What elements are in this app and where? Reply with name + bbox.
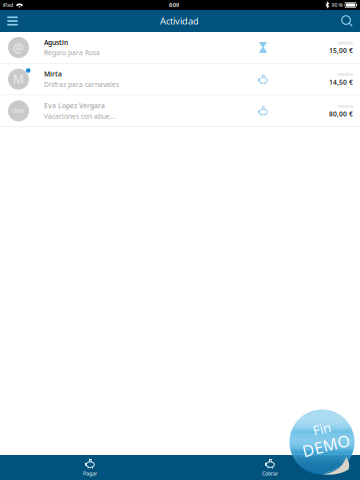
staticText: Agustin	[44, 38, 68, 47]
button[interactable]: Pagar	[0, 455, 180, 480]
staticText: iPad	[3, 1, 13, 9]
staticText: Regalo para Rosa	[44, 48, 100, 57]
staticText: Pagar	[83, 470, 97, 477]
staticText: M	[13, 71, 24, 87]
staticText: 14,50 €	[329, 78, 353, 87]
staticText: Eva Lopez Vergara	[44, 101, 105, 110]
staticText: 80,00 €	[329, 109, 353, 118]
staticText: Disfraz para carnavales	[44, 80, 119, 89]
staticText: 15,00 €	[329, 46, 353, 55]
staticText: 24/6/2016	[337, 40, 353, 45]
staticText: Mirta	[44, 70, 62, 78]
button[interactable]: M	[0, 64, 360, 95]
button[interactable]: Cobrar	[180, 455, 360, 480]
staticText: 15/2/2016	[337, 104, 353, 109]
staticText: Vacaciones con abue…	[44, 112, 115, 121]
button[interactable]: @	[0, 32, 360, 63]
staticText: Cobrar	[262, 470, 278, 477]
staticText: IBAN	[12, 107, 24, 114]
staticText: 13/5/2016	[337, 72, 353, 77]
staticText: @	[13, 39, 24, 55]
staticText: DEMO	[300, 435, 348, 456]
staticText: Actividad	[160, 15, 199, 27]
staticText: 8:09	[169, 1, 179, 9]
button[interactable]: Search	[334, 10, 360, 32]
staticText: 90 %	[331, 1, 342, 9]
button[interactable]: Menu	[0, 10, 25, 32]
button[interactable]: IBAN	[0, 95, 360, 126]
staticText: Fin	[315, 419, 333, 437]
